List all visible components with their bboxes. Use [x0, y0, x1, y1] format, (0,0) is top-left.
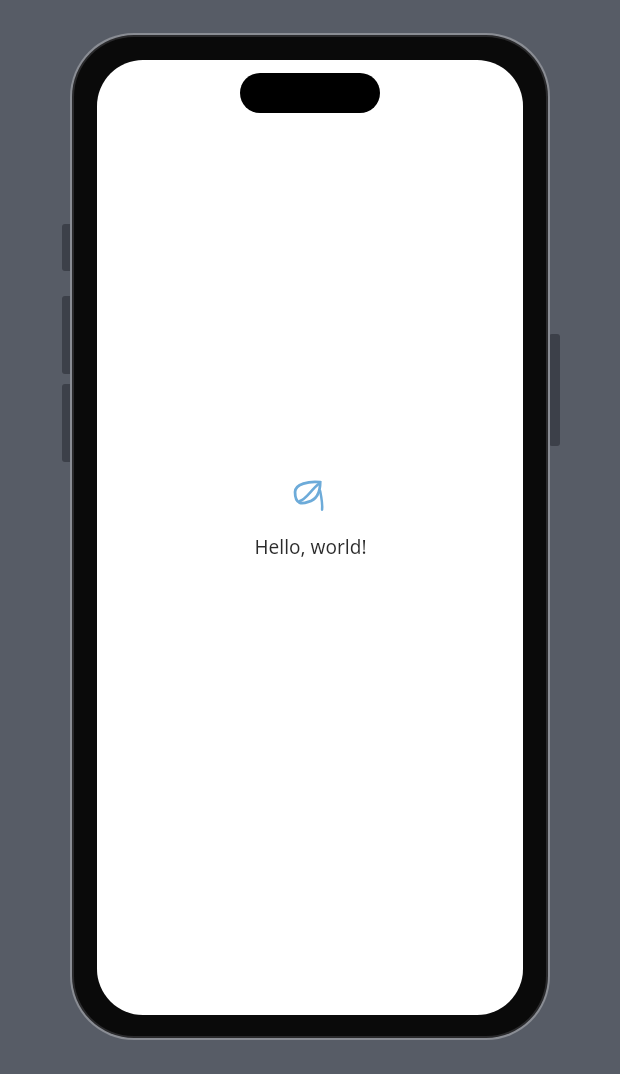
- staticText: Hello, world!: [254, 534, 367, 560]
